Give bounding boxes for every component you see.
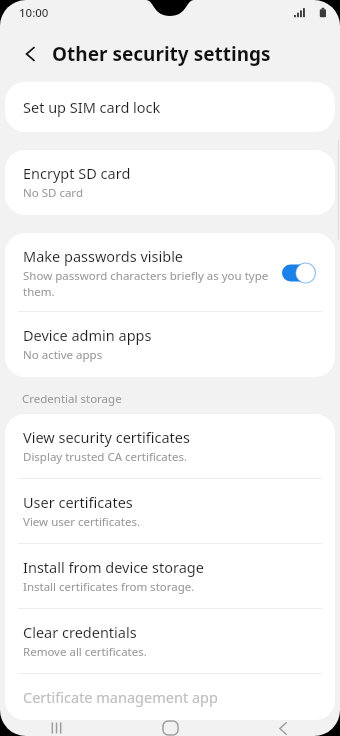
staticText: Install certificates from storage. (23, 579, 195, 595)
staticText: Encrypt SD card (23, 163, 131, 183)
button[interactable]: Encrypt SD card (5, 150, 335, 215)
button[interactable]: Home (114, 720, 227, 736)
staticText: View security certificates (23, 427, 190, 447)
staticText: Clear credentials (23, 622, 137, 642)
button[interactable]: Clear credentials (5, 609, 335, 673)
staticText: Set up SIM card lock (23, 97, 161, 117)
staticText: User certificates (23, 492, 133, 512)
button[interactable]: Install from device storage (5, 544, 335, 608)
button[interactable]: Device admin apps (5, 312, 335, 377)
button[interactable]: Back (227, 720, 340, 736)
staticText: Remove all certificates. (23, 644, 147, 660)
staticText: Make passwords visible (23, 246, 184, 266)
button[interactable]: Back (14, 37, 48, 71)
staticText: No active apps (23, 347, 103, 363)
staticText: Certificate management app (23, 687, 218, 707)
button[interactable]: User certificates (5, 479, 335, 543)
button[interactable]: View security certificates (5, 414, 335, 478)
button[interactable]: Make passwords visible (5, 233, 335, 311)
button[interactable]: Set up SIM card lock (5, 82, 335, 132)
staticText: Other security settings (52, 41, 271, 67)
staticText: View user certificates. (23, 514, 140, 530)
staticText: Display trusted CA certificates. (23, 449, 188, 465)
staticText: Install from device storage (23, 557, 204, 577)
staticText: No SD card (23, 185, 83, 201)
staticText: Credential storage (22, 391, 122, 407)
button[interactable]: Make passwords visible (279, 261, 317, 285)
button[interactable]: Recents (0, 720, 114, 736)
staticText: 10:00 (19, 5, 49, 21)
button[interactable]: Certificate management app (5, 674, 335, 720)
staticText: Device admin apps (23, 325, 152, 345)
staticText: Show password characters briefly as you … (23, 268, 271, 299)
